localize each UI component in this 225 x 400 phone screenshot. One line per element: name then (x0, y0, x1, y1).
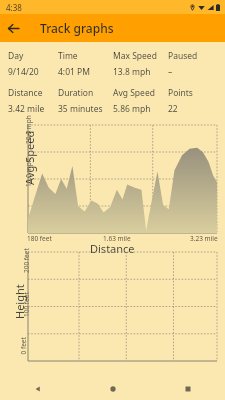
staticText: Duration (58, 87, 94, 99)
button[interactable]: Back (0, 15, 26, 41)
staticText: Avg Speed (22, 130, 37, 185)
staticText: Height (12, 284, 27, 319)
staticText: Avg Speed (113, 87, 155, 99)
staticText: 5.86 mph (113, 103, 151, 115)
staticText: Distance (90, 241, 135, 256)
button[interactable]: Home (75, 378, 150, 400)
staticText: 35 minutes (58, 103, 103, 115)
staticText: 22 (168, 103, 178, 115)
staticText: Max Speed (113, 50, 157, 62)
staticText: 100 feet (22, 292, 31, 317)
staticText: 4:01 PM (58, 66, 90, 78)
staticText: Time (58, 50, 78, 62)
staticText: 3.23 mile (190, 234, 218, 243)
button[interactable]: Recent apps (150, 378, 225, 400)
staticText: Distance (8, 87, 43, 99)
staticText: 20.0 mph (24, 115, 33, 144)
button[interactable]: Back (0, 378, 75, 400)
staticText: Day (8, 50, 24, 62)
staticText: 9/14/20 (8, 66, 39, 78)
staticText: 10.0 mph (24, 158, 33, 187)
staticText: – (168, 66, 173, 78)
staticText: Points (168, 87, 193, 99)
staticText: 1.63 mile (103, 234, 131, 243)
staticText: Track graphs (40, 20, 114, 36)
staticText: 0 feet (18, 336, 27, 354)
staticText: 13.8 mph (113, 66, 151, 78)
staticText: 4:38 (6, 2, 22, 13)
staticText: 200 feet (22, 248, 31, 273)
staticText: 3.42 mile (8, 103, 45, 115)
staticText: 180 feet (27, 234, 52, 243)
staticText: Paused (168, 50, 198, 62)
